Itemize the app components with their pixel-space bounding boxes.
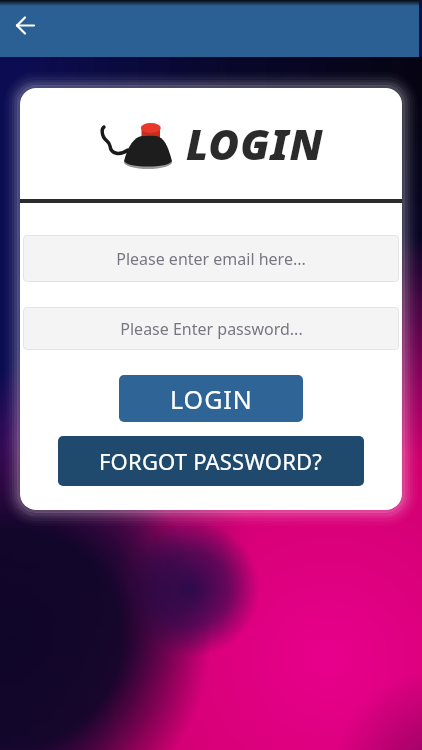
button[interactable]: FORGOT PASSWORD? [58, 436, 364, 486]
button[interactable]: Please Enter password... [23, 307, 399, 350]
staticText: FORGOT PASSWORD? [99, 446, 323, 476]
button[interactable]: Please enter email here... [23, 235, 399, 282]
button[interactable] [9, 9, 41, 41]
button[interactable]: LOGIN [119, 375, 303, 422]
staticText: Please enter email here... [116, 248, 306, 270]
staticText: Please Enter password... [120, 318, 303, 340]
staticText: LOGIN [170, 382, 253, 416]
staticText: LOGIN [186, 115, 324, 172]
